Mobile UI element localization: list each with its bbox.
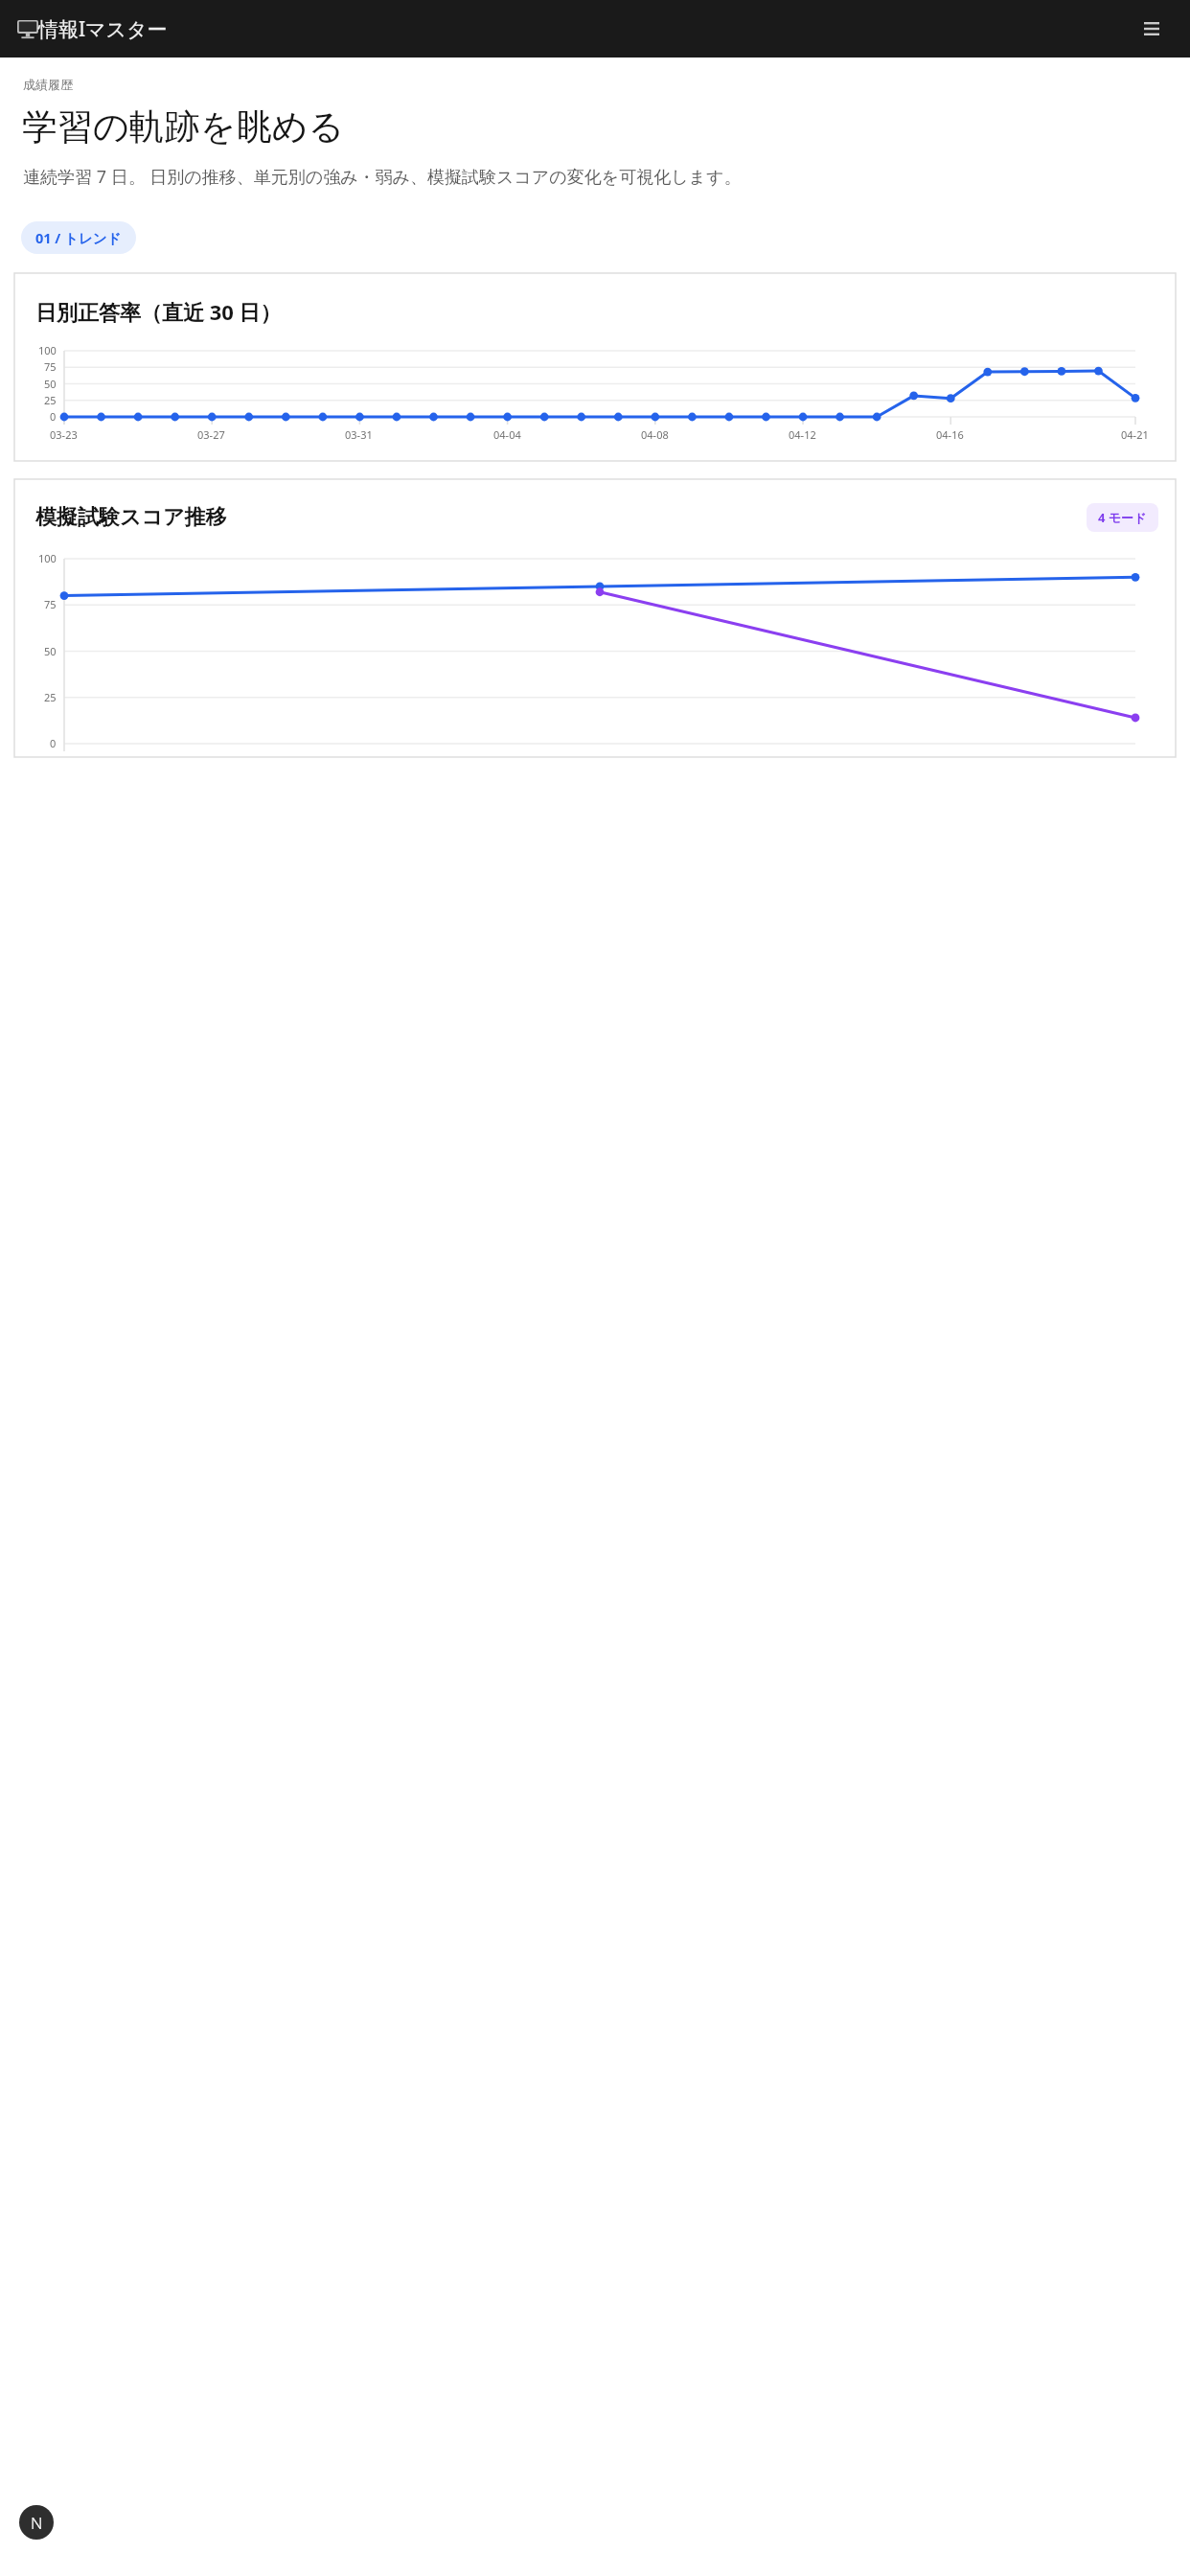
button[interactable]: 4 モード: [1087, 503, 1158, 532]
staticText: 75: [44, 359, 57, 374]
staticText: 連続学習 7 日。 日別の推移、単元別の強み・弱み、模擬試験スコアの変化を可視化…: [23, 165, 742, 189]
staticText: 4 モード: [1098, 509, 1147, 526]
staticText: N: [31, 2512, 43, 2534]
staticText: 学習の軌跡を眺める: [22, 104, 345, 149]
staticText: 01 / トレンド: [35, 228, 122, 247]
staticText: 04-12: [789, 427, 816, 442]
staticText: 日別正答率（直近 30 日）: [35, 297, 282, 326]
staticText: 04-08: [641, 427, 669, 442]
staticText: 75: [44, 597, 57, 611]
staticText: 04-04: [493, 427, 521, 442]
staticText: 情報Iマスター: [38, 15, 168, 43]
staticText: 50: [44, 644, 57, 658]
button[interactable]: Menu: [1131, 8, 1173, 50]
button[interactable]: 模擬試験スコア推移: [14, 479, 1176, 757]
button[interactable]: Next page: [19, 2505, 54, 2540]
staticText: 25: [44, 393, 57, 407]
staticText: 03-23: [50, 427, 78, 442]
staticText: 03-27: [197, 427, 225, 442]
staticText: 成績履歴: [23, 77, 73, 92]
staticText: 04-16: [936, 427, 964, 442]
staticText: 50: [44, 377, 57, 391]
staticText: 04-21: [1121, 427, 1149, 442]
button[interactable]: 日別正答率（直近 30 日）: [14, 273, 1176, 461]
staticText: 25: [44, 690, 57, 704]
staticText: 100: [38, 551, 57, 565]
staticText: 0: [50, 736, 57, 750]
staticText: 100: [38, 343, 57, 357]
staticText: 0: [50, 409, 57, 424]
staticText: 模擬試験スコア推移: [35, 504, 227, 531]
staticText: 03-31: [345, 427, 373, 442]
button[interactable]: 情報Iマスター: [17, 15, 168, 43]
button[interactable]: 01 / トレンド: [21, 221, 136, 254]
